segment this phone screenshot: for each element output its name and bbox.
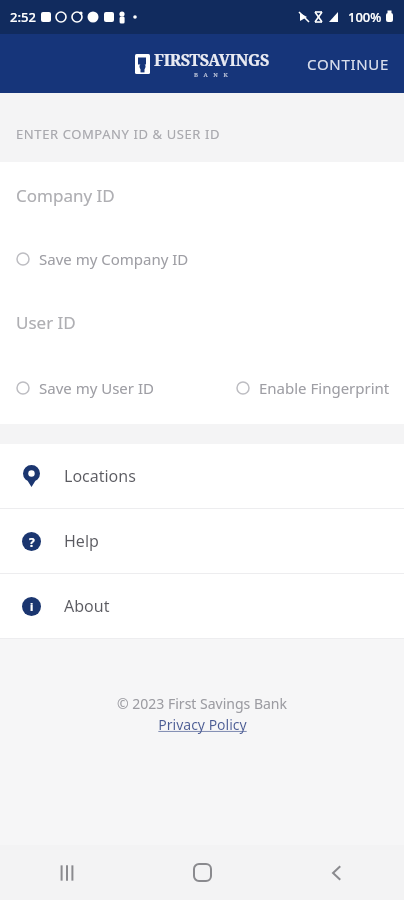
staticText: About [64,595,110,617]
button[interactable]: Back [302,845,372,900]
button[interactable]: i [0,574,404,638]
button[interactable]: ? [0,509,404,573]
staticText: Help [64,530,99,552]
button[interactable]: Locations [0,444,404,508]
button[interactable]: Privacy Policy [158,715,247,734]
staticText: ENTER COMPANY ID & USER ID [16,125,221,143]
staticText: i [30,599,34,614]
button[interactable]: Save my User ID [16,374,154,402]
staticText: Company ID [16,184,115,207]
button[interactable]: CONTINUE [293,44,404,84]
staticText: Save my Company ID [39,249,189,269]
staticText: Locations [64,465,136,487]
staticText: User ID [16,311,76,334]
button[interactable]: Home [167,845,237,900]
staticText: B A N K [194,71,230,79]
button[interactable]: Recent apps [32,845,102,900]
staticText: CONTINUE [307,54,390,74]
staticText: FIRSTSAVINGS [154,49,270,71]
staticText: © 2023 First Savings Bank [117,694,287,713]
button[interactable]: Enable Fingerprint [236,374,390,402]
staticText: 100% [348,8,382,26]
staticText: Privacy Policy [158,715,247,734]
button[interactable]: Save my Company ID [16,245,189,273]
staticText: Save my User ID [39,378,154,398]
staticText: 2:52 [10,8,36,26]
staticText: Enable Fingerprint [259,378,390,398]
staticText: ? [29,534,35,550]
